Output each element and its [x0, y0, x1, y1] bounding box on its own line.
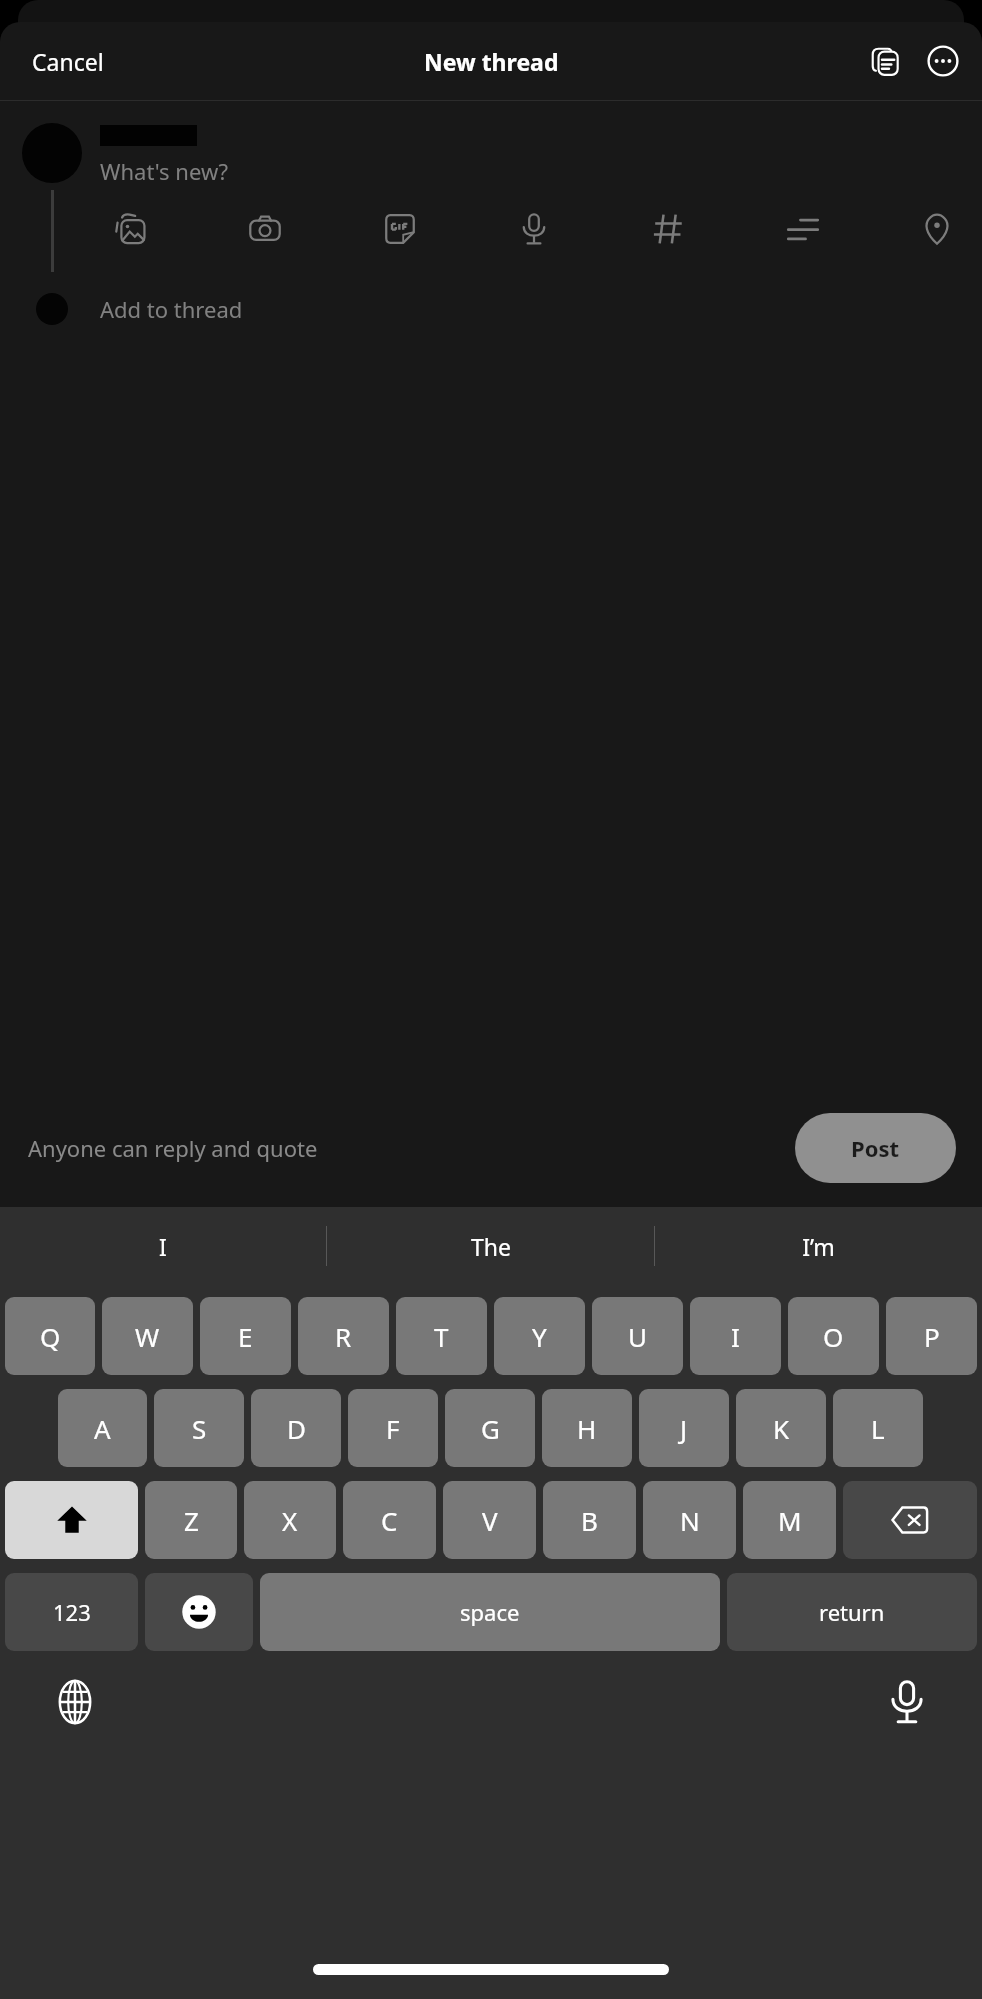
staticText: W: [135, 1319, 160, 1354]
button[interactable]: T: [396, 1297, 487, 1375]
button[interactable]: Add to thread: [0, 272, 982, 346]
staticText: G: [481, 1411, 500, 1446]
staticText: Q: [40, 1319, 61, 1354]
staticText: return: [819, 1597, 885, 1627]
staticText: Z: [184, 1503, 199, 1538]
staticText: L: [871, 1411, 885, 1446]
staticText: Anyone can reply and quote: [28, 1133, 318, 1163]
staticText: I’m: [802, 1231, 835, 1262]
button[interactable]: Cancel: [24, 40, 112, 83]
staticText: B: [581, 1503, 598, 1538]
button[interactable]: N: [643, 1481, 736, 1559]
staticText: H: [577, 1411, 597, 1446]
button[interactable]: C: [343, 1481, 436, 1559]
button[interactable]: O: [788, 1297, 879, 1375]
staticText: X: [282, 1503, 298, 1538]
staticText: Y: [532, 1319, 547, 1354]
staticText: S: [192, 1411, 207, 1446]
staticText: D: [287, 1411, 306, 1446]
staticText: V: [482, 1503, 498, 1538]
button[interactable]: Q: [5, 1297, 95, 1375]
button[interactable]: F: [348, 1389, 438, 1467]
staticText: C: [381, 1503, 398, 1538]
staticText: U: [628, 1319, 648, 1354]
button[interactable]: A: [58, 1389, 147, 1467]
button[interactable]: What's new?: [100, 156, 982, 186]
staticText: Post: [851, 1133, 900, 1163]
button[interactable]: Y: [494, 1297, 585, 1375]
button[interactable]: Add poll: [772, 198, 834, 260]
button[interactable]: space: [260, 1573, 720, 1651]
staticText: What's new?: [100, 156, 229, 186]
button[interactable]: Add tag: [637, 198, 699, 260]
button[interactable]: U: [592, 1297, 683, 1375]
button[interactable]: Add photo: [100, 198, 162, 260]
button[interactable]: K: [736, 1389, 826, 1467]
staticText: T: [434, 1319, 449, 1354]
staticText: F: [386, 1411, 400, 1446]
staticText: E: [238, 1319, 253, 1354]
button[interactable]: E: [200, 1297, 291, 1375]
button[interactable]: V: [443, 1481, 536, 1559]
button[interactable]: L: [833, 1389, 923, 1467]
button[interactable]: Camera: [234, 198, 296, 260]
button[interactable]: Dictate: [878, 1673, 936, 1731]
button[interactable]: X: [244, 1481, 336, 1559]
button[interactable]: D: [251, 1389, 341, 1467]
button[interactable]: S: [154, 1389, 244, 1467]
button[interactable]: B: [543, 1481, 636, 1559]
button[interactable]: 123: [5, 1573, 138, 1651]
button[interactable]: Record audio: [503, 198, 565, 260]
staticText: New thread: [424, 46, 559, 77]
button[interactable]: Drafts: [862, 38, 908, 84]
button[interactable]: H: [542, 1389, 632, 1467]
button[interactable]: J: [639, 1389, 729, 1467]
staticText: The: [471, 1231, 511, 1262]
button[interactable]: Anyone can reply and quote: [20, 1127, 326, 1169]
button[interactable]: I’m: [655, 1207, 982, 1285]
staticText: O: [823, 1319, 844, 1354]
staticText: J: [680, 1411, 688, 1446]
button[interactable]: Add location: [906, 198, 968, 260]
staticText: 123: [53, 1597, 91, 1627]
staticText: P: [924, 1319, 940, 1354]
staticText: Add to thread: [100, 294, 243, 324]
staticText: I: [731, 1319, 740, 1354]
button[interactable]: R: [298, 1297, 389, 1375]
button[interactable]: G: [445, 1389, 535, 1467]
button[interactable]: Emoji: [145, 1573, 253, 1651]
staticText: A: [94, 1411, 111, 1446]
button[interactable]: Post: [795, 1113, 956, 1183]
staticText: Cancel: [32, 46, 104, 77]
button[interactable]: Z: [145, 1481, 237, 1559]
button[interactable]: I: [0, 1207, 326, 1285]
button[interactable]: Change keyboard: [46, 1673, 104, 1731]
button[interactable]: W: [102, 1297, 193, 1375]
button[interactable]: [22, 123, 82, 183]
button[interactable]: I: [690, 1297, 781, 1375]
button[interactable]: M: [743, 1481, 836, 1559]
button[interactable]: P: [886, 1297, 977, 1375]
button[interactable]: More options: [920, 38, 966, 84]
staticText: R: [335, 1319, 352, 1354]
staticText: N: [680, 1503, 700, 1538]
staticText: M: [778, 1503, 802, 1538]
button[interactable]: The: [327, 1207, 654, 1285]
staticText: I: [159, 1231, 167, 1262]
button[interactable]: Shift: [5, 1481, 138, 1559]
button[interactable]: Backspace: [843, 1481, 977, 1559]
button[interactable]: return: [727, 1573, 977, 1651]
staticText: K: [773, 1411, 790, 1446]
button[interactable]: Add GIF: [369, 198, 431, 260]
staticText: space: [460, 1597, 520, 1627]
